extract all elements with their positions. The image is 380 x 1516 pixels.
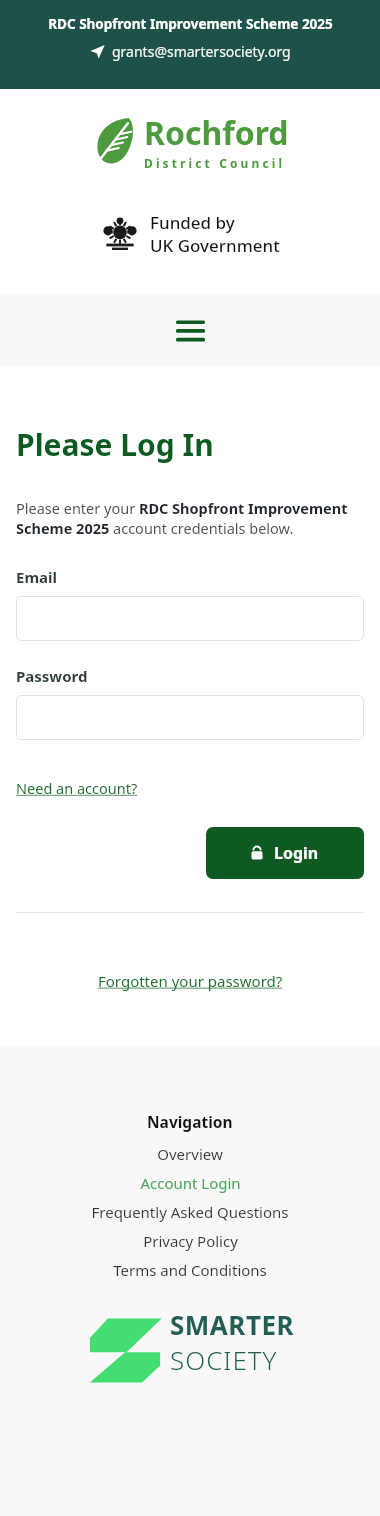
button[interactable]: Forgotten your password? [16, 971, 364, 991]
staticText: Forgotten your password? [98, 971, 283, 991]
other: Rochford District Council logo [92, 115, 138, 167]
staticText: Password [16, 666, 88, 686]
staticText: SMARTER [170, 1307, 295, 1342]
button[interactable]: Email [90, 42, 291, 61]
other: UK Government crest [100, 214, 140, 254]
staticText: Please enter your RDC Shopfront Improvem… [16, 498, 364, 539]
button[interactable]: Rochford District Council logo [88, 111, 293, 171]
button[interactable]: Email field [16, 596, 364, 641]
staticText: Account Login [140, 1173, 241, 1193]
button[interactable]: UK Government crest [100, 211, 280, 257]
button[interactable]: Overview [151, 1143, 229, 1165]
button[interactable]: Smarter Society logo [86, 1303, 295, 1381]
staticText: Need an account? [16, 778, 138, 798]
staticText: Email [16, 567, 57, 587]
staticText: D i s t r i c t C o u n c i l [144, 155, 283, 171]
staticText: Navigation [147, 1111, 233, 1132]
staticText: RDC Shopfront Improvement Scheme 2025 [48, 15, 333, 33]
staticText: Rochford [144, 111, 289, 155]
button[interactable]: Password field [16, 695, 364, 740]
button[interactable]: Need an account? [16, 778, 138, 798]
staticText: Terms and Conditions [113, 1260, 267, 1280]
button[interactable]: Menu [168, 310, 212, 350]
button[interactable]: Terms and Conditions [107, 1259, 273, 1281]
button[interactable]: Frequently Asked Questions [85, 1201, 295, 1223]
button[interactable]: Login [206, 827, 364, 879]
other: Smarter Society logo [86, 1303, 164, 1381]
button[interactable]: Account Login [134, 1172, 247, 1194]
staticText: Overview [157, 1144, 223, 1164]
staticText: Funded by [150, 211, 235, 234]
staticText: Frequently Asked Questions [91, 1202, 289, 1222]
other: Email [90, 44, 105, 59]
button[interactable]: Privacy Policy [137, 1230, 244, 1252]
staticText: Please Log In [16, 424, 214, 465]
staticText: Privacy Policy [143, 1231, 238, 1251]
staticText: UK Government [150, 234, 280, 257]
staticText: grants@smartersociety.org [112, 42, 291, 61]
staticText: Login [274, 842, 319, 864]
staticText: SOCIETY [170, 1342, 278, 1377]
